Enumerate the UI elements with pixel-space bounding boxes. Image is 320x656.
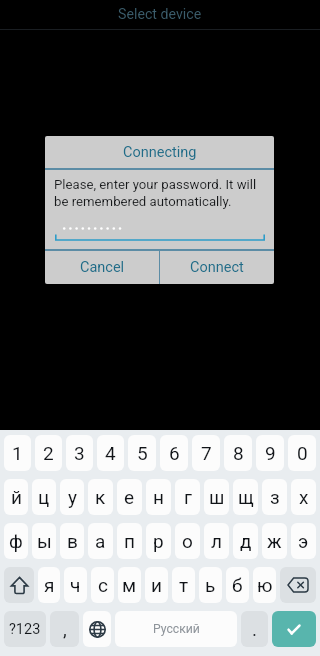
button[interactable]: ф: [4, 523, 28, 559]
button[interactable]: ,: [50, 611, 79, 647]
button[interactable]: н: [146, 479, 171, 515]
staticText: й: [11, 486, 22, 508]
staticText: э: [298, 530, 309, 552]
staticText: д: [240, 530, 252, 552]
staticText: Select device: [118, 6, 202, 23]
staticText: ш: [209, 486, 225, 508]
staticText: 7: [201, 442, 212, 464]
staticText: т: [179, 574, 189, 596]
staticText: .: [252, 618, 258, 640]
button[interactable]: у: [60, 479, 84, 515]
staticText: о: [182, 530, 193, 552]
staticText: 3: [74, 442, 85, 464]
staticText: ж: [267, 530, 282, 552]
button[interactable]: 3: [66, 435, 93, 471]
staticText: и: [151, 574, 162, 596]
staticText: к: [95, 486, 106, 508]
staticText: 1: [12, 442, 23, 464]
button[interactable]: щ: [233, 479, 258, 515]
staticText: г: [184, 486, 192, 508]
staticText: Connecting: [123, 144, 197, 161]
staticText: 5: [137, 442, 148, 464]
staticText: 9: [265, 442, 276, 464]
button[interactable]: 1: [4, 435, 31, 471]
staticText: 2: [43, 442, 54, 464]
button[interactable]: а: [88, 523, 113, 559]
button[interactable]: 6: [160, 435, 188, 471]
button[interactable]: ?123: [4, 611, 46, 647]
button[interactable]: ч: [64, 567, 87, 603]
staticText: ц: [38, 486, 50, 508]
button[interactable]: ш: [204, 479, 229, 515]
staticText: ь: [205, 574, 216, 596]
button[interactable]: м: [118, 567, 141, 603]
button[interactable]: Cancel: [45, 251, 159, 284]
button[interactable]: я: [38, 567, 60, 603]
staticText: х: [299, 486, 309, 508]
button[interactable]: и: [145, 567, 168, 603]
button[interactable]: 5: [128, 435, 156, 471]
button[interactable]: 4: [97, 435, 124, 471]
button[interactable]: с: [91, 567, 114, 603]
button[interactable]: ю: [253, 567, 276, 603]
button[interactable]: к: [88, 479, 113, 515]
button[interactable]: д: [233, 523, 258, 559]
button[interactable]: й: [4, 479, 28, 515]
staticText: ч: [70, 574, 81, 596]
button[interactable]: ж: [262, 523, 287, 559]
button[interactable]: р: [146, 523, 171, 559]
button[interactable]: в: [60, 523, 84, 559]
staticText: б: [232, 574, 243, 596]
button[interactable]: б: [226, 567, 249, 603]
button[interactable]: о: [175, 523, 200, 559]
staticText: 0: [297, 442, 308, 464]
button[interactable]: ы: [32, 523, 56, 559]
staticText: а: [95, 530, 106, 552]
staticText: 8: [233, 442, 244, 464]
staticText: ,: [63, 618, 67, 640]
button[interactable]: х: [291, 479, 316, 515]
staticText: 6: [169, 442, 180, 464]
button[interactable]: 9: [256, 435, 284, 471]
button[interactable]: 0: [288, 435, 316, 471]
staticText: Please, enter your password. It will be …: [54, 177, 265, 209]
staticText: я: [44, 574, 55, 596]
staticText: Cancel: [80, 259, 125, 276]
button[interactable]: п: [117, 523, 142, 559]
staticText: 4: [105, 442, 116, 464]
staticText: Русский: [153, 622, 200, 636]
staticText: ю: [257, 574, 273, 596]
button[interactable]: 7: [192, 435, 220, 471]
button[interactable]: л: [204, 523, 229, 559]
button[interactable]: э: [291, 523, 316, 559]
staticText: ы: [37, 530, 52, 552]
button[interactable]: 8: [224, 435, 252, 471]
button[interactable]: ц: [32, 479, 56, 515]
button[interactable]: Русский: [115, 611, 237, 647]
staticText: п: [124, 530, 135, 552]
button[interactable]: е: [117, 479, 142, 515]
button[interactable]: г: [175, 479, 200, 515]
button[interactable]: 2: [35, 435, 62, 471]
staticText: л: [211, 530, 222, 552]
button[interactable]: Connect: [160, 251, 274, 284]
button[interactable]: з: [262, 479, 287, 515]
staticText: ф: [9, 530, 23, 552]
staticText: р: [153, 530, 164, 552]
staticText: е: [124, 486, 135, 508]
button[interactable]: Enter: [272, 611, 316, 647]
staticText: в: [67, 530, 78, 552]
button[interactable]: .: [241, 611, 268, 647]
staticText: с: [98, 574, 108, 596]
staticText: н: [153, 486, 164, 508]
button[interactable]: ь: [199, 567, 222, 603]
staticText: у: [68, 486, 77, 508]
staticText: м: [122, 574, 137, 596]
button[interactable]: Shift: [4, 567, 34, 603]
button[interactable]: Change language: [83, 611, 111, 647]
staticText: ?123: [9, 621, 41, 638]
button[interactable]: Backspace: [280, 567, 316, 603]
button[interactable]: т: [172, 567, 195, 603]
staticText: щ: [238, 486, 254, 508]
staticText: з: [270, 486, 280, 508]
